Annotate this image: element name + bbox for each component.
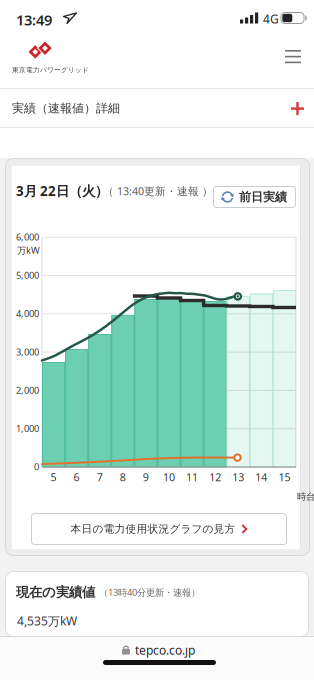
staticText: 8 bbox=[120, 470, 126, 484]
staticText: 4G bbox=[263, 11, 279, 27]
staticText: 2,000 bbox=[16, 384, 39, 396]
button[interactable]: メニュー bbox=[279, 44, 307, 69]
staticText: 0 bbox=[34, 460, 39, 473]
staticText: （13時40分更新・速報） bbox=[99, 586, 200, 598]
staticText: 13 bbox=[232, 470, 244, 484]
staticText: 1,000 bbox=[16, 422, 39, 435]
button[interactable]: アドレスバー: tepco.co.jp bbox=[112, 639, 205, 661]
staticText: 4,535万kW bbox=[17, 613, 77, 629]
staticText: 時台 bbox=[297, 491, 314, 502]
staticText: 現在の実績値 bbox=[16, 584, 95, 600]
staticText: 3月 22日（火） bbox=[16, 182, 108, 200]
staticText: 5 bbox=[50, 470, 56, 484]
staticText: 9 bbox=[143, 470, 149, 484]
staticText: 6,000 bbox=[16, 231, 39, 243]
staticText: 5,000 bbox=[16, 269, 39, 281]
staticText: 14 bbox=[255, 470, 267, 484]
staticText: 6 bbox=[74, 470, 80, 484]
staticText: 万kW bbox=[17, 244, 40, 256]
staticText: 7 bbox=[97, 470, 103, 484]
button[interactable]: 本日の電力使用状況グラフの見方 bbox=[31, 513, 287, 545]
staticText: 10 bbox=[163, 470, 175, 484]
button[interactable]: 実績（速報値）詳細 bbox=[0, 89, 314, 128]
staticText: 15 bbox=[278, 470, 290, 484]
staticText: 東京電力パワーグリッド bbox=[12, 66, 89, 74]
staticText: （ 13:40更新・速報 ） bbox=[103, 184, 213, 198]
staticText: 4,000 bbox=[16, 307, 39, 320]
staticText: 11 bbox=[186, 470, 198, 484]
button[interactable]: 前日実績 bbox=[213, 186, 296, 208]
staticText: 実績（速報値）詳細 bbox=[12, 101, 120, 116]
staticText: 本日の電力使用状況グラフの見方 bbox=[70, 522, 235, 535]
staticText: 12 bbox=[209, 470, 221, 484]
staticText: 前日実績 bbox=[239, 190, 287, 204]
staticText: 13:49 bbox=[16, 10, 52, 29]
staticText: 3,000 bbox=[16, 346, 39, 358]
staticText: tepco.co.jp bbox=[135, 642, 195, 658]
